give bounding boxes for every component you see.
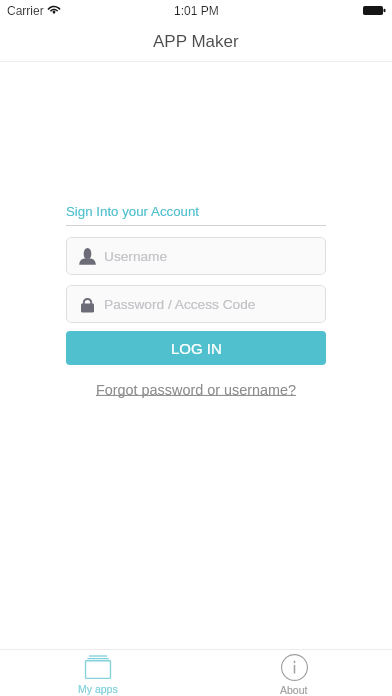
button[interactable]: Username	[66, 237, 326, 275]
staticText: My apps	[78, 683, 118, 695]
staticText: Username	[104, 249, 168, 264]
staticText: 1:01 PM	[174, 4, 219, 17]
button[interactable]: LOG IN	[66, 331, 326, 365]
button[interactable]: Forgot password or username?	[96, 382, 296, 398]
button[interactable]: About	[196, 650, 392, 696]
button[interactable]: My apps	[0, 650, 196, 696]
staticText: About	[280, 684, 308, 696]
staticText: Carrier	[7, 4, 44, 17]
button[interactable]: Password / Access Code	[66, 285, 326, 323]
staticText: LOG IN	[171, 340, 222, 357]
staticText: Password / Access Code	[104, 297, 256, 312]
staticText: APP Maker	[153, 32, 239, 51]
staticText: Sign Into your Account	[66, 204, 200, 219]
